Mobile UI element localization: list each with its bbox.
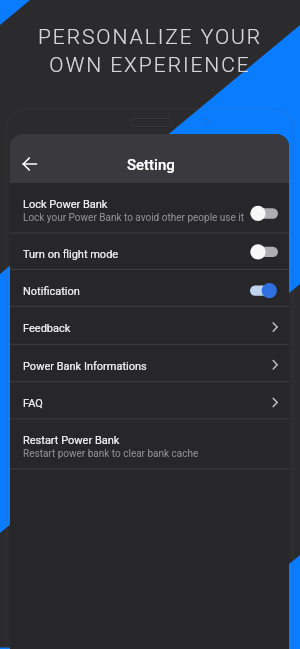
button[interactable] xyxy=(10,381,289,418)
staticText: Turn on flight mode xyxy=(23,248,119,261)
staticText: FAQ xyxy=(23,397,43,410)
button[interactable] xyxy=(10,183,289,233)
staticText: Notification xyxy=(23,285,80,298)
button[interactable] xyxy=(10,344,289,381)
staticText: Power Bank Informations xyxy=(23,360,147,373)
staticText: Feedback xyxy=(23,322,71,335)
staticText: Restart power bank to clear bank cache xyxy=(23,448,199,460)
button[interactable] xyxy=(10,269,289,306)
staticText: Restart Power Bank xyxy=(23,434,120,447)
staticText: Lock your Power Bank to avoid other peop… xyxy=(23,212,245,224)
staticText: Setting xyxy=(127,156,175,174)
staticText: Lock Power Bank xyxy=(23,198,108,211)
button[interactable] xyxy=(10,306,289,344)
button[interactable]: Back xyxy=(17,148,49,180)
staticText: PERSONALIZE YOUR OWN EXPERIENCE xyxy=(0,25,300,77)
button[interactable] xyxy=(10,418,289,468)
button[interactable] xyxy=(10,233,289,269)
